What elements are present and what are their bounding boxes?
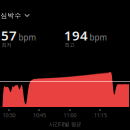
- staticText: 최고: [64, 42, 74, 48]
- staticText: 최저: [1, 42, 11, 48]
- staticText: 10:45: [33, 112, 46, 119]
- staticText: 심박수: [0, 11, 21, 20]
- staticText: 10:30: [2, 112, 15, 119]
- staticText: 194: [64, 26, 88, 44]
- staticText: 11:15: [94, 112, 107, 119]
- staticText: bpm: [90, 32, 107, 43]
- staticText: 57: [1, 26, 17, 44]
- staticText: 시간대별 평균: [49, 121, 81, 128]
- button[interactable]: 심박수: [0, 11, 30, 20]
- staticText: 11:00: [63, 112, 76, 119]
- staticText: bpm: [19, 32, 36, 43]
